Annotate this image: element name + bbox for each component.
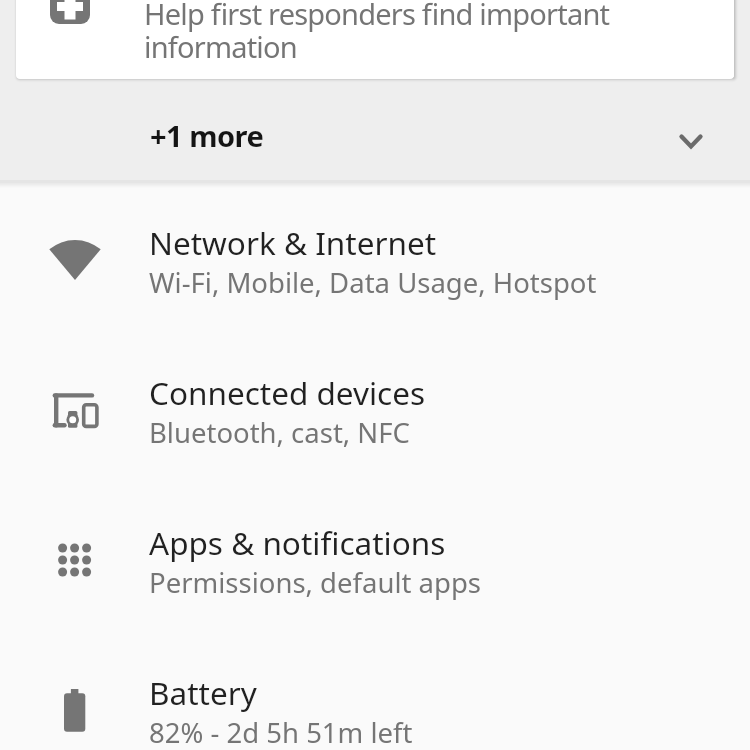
staticText: +1 more — [150, 116, 264, 155]
button[interactable]: Battery — [0, 633, 750, 750]
staticText: 82% - 2d 5h 51m left — [149, 714, 413, 750]
staticText: Battery — [149, 671, 257, 714]
button[interactable]: Help first responders find important inf… — [16, 0, 734, 79]
staticText: Network & Internet — [149, 221, 437, 264]
staticText: Bluetooth, cast, NFC — [149, 414, 410, 451]
button[interactable]: Apps & notifications — [0, 483, 750, 633]
button[interactable] — [0, 82, 750, 180]
staticText: Help first responders find important inf… — [144, 0, 610, 66]
button[interactable]: Network & Internet — [0, 183, 750, 333]
button[interactable]: Connected devices — [0, 333, 750, 483]
staticText: Wi-Fi, Mobile, Data Usage, Hotspot — [149, 264, 597, 301]
staticText: Apps & notifications — [149, 521, 446, 564]
staticText: Permissions, default apps — [149, 564, 481, 601]
staticText: Connected devices — [149, 371, 426, 414]
